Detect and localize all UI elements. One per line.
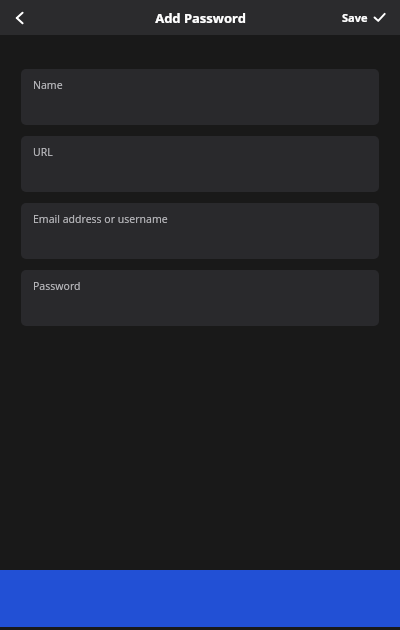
staticText: Save	[342, 10, 368, 25]
button[interactable]: Save	[342, 0, 386, 35]
button[interactable]: Password	[21, 270, 379, 326]
staticText: Email address or username	[33, 212, 168, 226]
button[interactable]: URL	[21, 136, 379, 192]
staticText: Name	[33, 78, 63, 92]
button[interactable]: Name	[21, 69, 379, 125]
staticText: URL	[33, 145, 53, 159]
staticText: Password	[33, 279, 81, 293]
button[interactable]: Back	[0, 0, 40, 35]
button[interactable]: Email address or username	[21, 203, 379, 259]
staticText: Add Password	[155, 9, 246, 27]
